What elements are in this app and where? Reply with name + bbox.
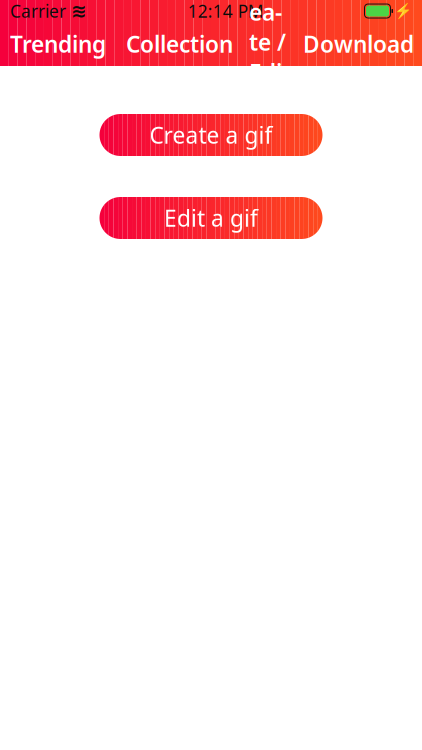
staticText: Carrier (10, 0, 66, 22)
button[interactable]: Trending (0, 22, 116, 66)
button[interactable]: Download (295, 22, 422, 66)
staticText: Create / Edit (249, 0, 289, 117)
staticText: Create a gif (149, 120, 272, 150)
button[interactable]: Create a gif (99, 114, 322, 156)
button[interactable]: Create / Edit (243, 22, 295, 66)
staticText (66, 0, 71, 22)
staticText: ≋ (71, 0, 87, 22)
button[interactable]: Edit a gif (99, 197, 322, 239)
staticText: Trending (10, 29, 106, 59)
staticText: ⚡ (394, 3, 412, 19)
button[interactable]: Collection (116, 22, 243, 66)
staticText: Edit a gif (164, 203, 258, 233)
staticText: Download (303, 29, 414, 59)
staticText: 12:14 PM (188, 0, 264, 22)
staticText: Collection (126, 29, 233, 59)
